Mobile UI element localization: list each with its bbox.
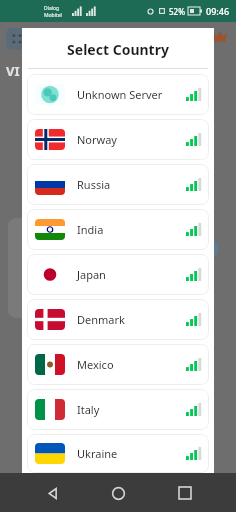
staticText: Ukraine — [77, 446, 186, 461]
staticText: India — [77, 222, 186, 237]
button[interactable]: Russia — [27, 164, 209, 205]
staticText: Unknown Server — [77, 87, 186, 102]
button[interactable]: India — [27, 209, 209, 250]
button[interactable]: Back — [37, 478, 67, 508]
staticText: Denmark — [77, 312, 186, 327]
staticText: Select Country — [22, 40, 214, 59]
button[interactable]: Mexico — [27, 344, 209, 385]
staticText: 09:46 — [206, 5, 230, 17]
button[interactable]: Norway — [27, 119, 209, 160]
staticText: Dialog Mobitel — [44, 5, 62, 18]
staticText: Russia — [77, 177, 186, 192]
staticText: Italy — [77, 402, 186, 417]
button[interactable]: Home — [103, 478, 133, 508]
button[interactable]: Italy — [27, 389, 209, 430]
button[interactable]: Unknown Server — [27, 74, 209, 115]
button[interactable]: Denmark — [27, 299, 209, 340]
staticText: Norway — [77, 132, 186, 147]
staticText: Mexico — [77, 357, 186, 372]
staticText: VI — [6, 62, 20, 80]
staticText: Japan — [77, 267, 186, 282]
button[interactable]: Recents — [170, 478, 200, 508]
button[interactable]: Ukraine — [27, 434, 209, 473]
button[interactable]: Japan — [27, 254, 209, 295]
staticText: 52% — [169, 6, 185, 17]
